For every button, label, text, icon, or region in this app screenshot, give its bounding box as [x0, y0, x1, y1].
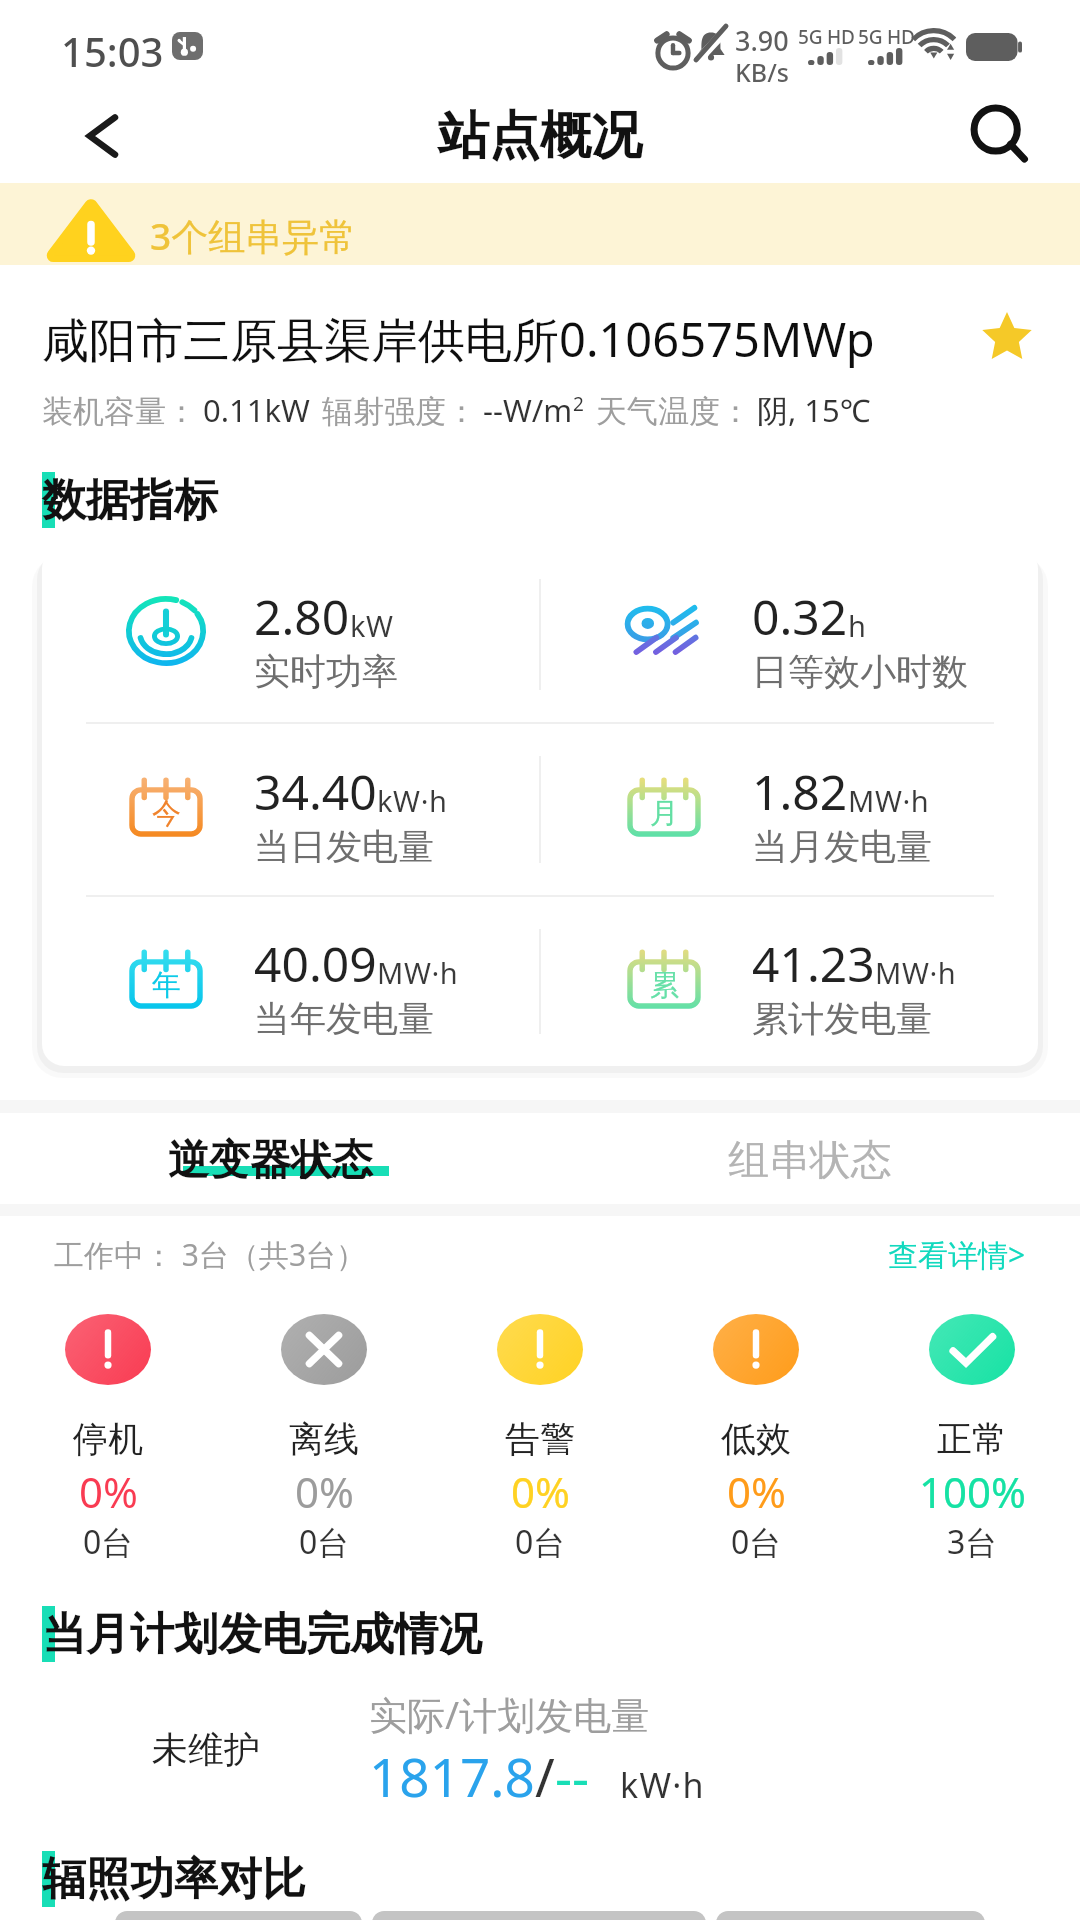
staticText: 阴, 15℃ — [757, 389, 871, 431]
staticText: 3个组串异常 — [150, 210, 357, 261]
staticText: 日等效小时数 — [752, 649, 968, 694]
button[interactable]: 2.80 — [42, 547, 540, 722]
staticText: 正常 — [937, 1417, 1007, 1461]
staticText: 数据指标 — [42, 473, 218, 528]
button[interactable] — [372, 1911, 706, 1920]
button[interactable]: 今 — [42, 724, 540, 895]
button[interactable]: 低效 — [648, 1314, 864, 1564]
staticText: 逆变器状态 — [168, 1135, 373, 1187]
staticText: 0.106575MWp — [559, 307, 875, 371]
button[interactable]: 0.32 — [540, 547, 1038, 722]
staticText: 累 — [650, 967, 679, 1004]
button[interactable]: 正常 — [864, 1314, 1080, 1564]
staticText: 1817.8 — [369, 1740, 535, 1812]
staticText: 站点概况 — [438, 104, 642, 168]
staticText: / — [535, 1740, 555, 1812]
staticText: 0% — [295, 1463, 354, 1520]
staticText: 34.40 — [254, 759, 377, 824]
staticText: 天气温度： — [596, 392, 751, 431]
staticText: 0台 — [731, 1520, 782, 1564]
button[interactable]: Search — [964, 100, 1036, 172]
button[interactable]: 告警 — [432, 1314, 648, 1564]
staticText: 工作中： 3台（共3台） — [54, 1234, 367, 1275]
button[interactable]: 停机 — [0, 1314, 216, 1564]
button[interactable]: 年 — [42, 897, 540, 1066]
staticText: 辐照功率对比 — [42, 1852, 306, 1907]
staticText: 0% — [79, 1463, 138, 1520]
button[interactable]: Back — [70, 106, 130, 166]
staticText: 年 — [152, 967, 181, 1004]
staticText: 0% — [727, 1463, 786, 1520]
button[interactable]: 月 — [540, 724, 1038, 895]
staticText: 实时功率 — [254, 649, 398, 694]
staticText: --W/m — [483, 389, 573, 431]
staticText: 辐射强度： — [322, 392, 477, 431]
staticText: 离线 — [289, 1417, 359, 1461]
button[interactable]: 查看详情> — [888, 1234, 1026, 1275]
staticText: 查看详情> — [888, 1234, 1026, 1275]
staticText: 100% — [919, 1463, 1026, 1520]
staticText: 41.23 — [752, 931, 875, 996]
staticText: 当月计划发电完成情况 — [42, 1607, 482, 1662]
staticText: 0台 — [83, 1520, 134, 1564]
staticText: MW·h — [875, 953, 957, 992]
staticText: kW·h — [377, 781, 448, 820]
staticText: 2.80 — [254, 584, 350, 649]
staticText: MW·h — [377, 953, 459, 992]
staticText: 月 — [650, 795, 679, 832]
staticText: 装机容量： — [42, 392, 197, 431]
staticText: 低效 — [721, 1417, 791, 1461]
staticText: kW·h — [590, 1762, 705, 1808]
button[interactable]: Favorite — [981, 310, 1033, 362]
staticText: 5G HD — [798, 24, 855, 50]
staticText: 实际/计划发电量 — [369, 1688, 650, 1740]
staticText: 5G HD — [858, 24, 915, 50]
staticText: KB/s — [735, 55, 789, 89]
staticText: 咸阳市三原县渠岸供电所 — [42, 312, 559, 371]
button[interactable] — [716, 1911, 985, 1920]
button[interactable]: 组串状态 — [540, 1113, 1080, 1204]
staticText: 组串状态 — [728, 1135, 892, 1187]
staticText: 今 — [152, 795, 181, 832]
staticText: 2 — [573, 391, 584, 417]
staticText: 告警 — [505, 1417, 575, 1461]
staticText: 0.32 — [752, 584, 848, 649]
staticText: 累计发电量 — [752, 996, 932, 1041]
staticText: 3台 — [947, 1520, 998, 1564]
staticText: 当年发电量 — [254, 996, 434, 1041]
staticText: 停机 — [73, 1417, 143, 1461]
button[interactable]: 累 — [540, 897, 1038, 1066]
staticText: MW·h — [848, 781, 930, 820]
staticText: 40.09 — [254, 931, 377, 996]
button[interactable]: 逆变器状态 — [0, 1113, 540, 1204]
staticText: 当月发电量 — [752, 824, 932, 869]
staticText: 当日发电量 — [254, 824, 434, 869]
staticText: 3.90 — [735, 22, 789, 59]
staticText: 0台 — [299, 1520, 350, 1564]
staticText: h — [848, 606, 867, 645]
staticText: 1.82 — [752, 759, 848, 824]
staticText: 0台 — [515, 1520, 566, 1564]
button[interactable] — [115, 1911, 362, 1920]
staticText: 0.11kW — [203, 389, 310, 431]
staticText: kW — [350, 606, 394, 645]
button[interactable]: 离线 — [216, 1314, 432, 1564]
staticText: -- — [555, 1740, 590, 1812]
staticText: 0% — [511, 1463, 570, 1520]
staticText: 15:03 — [61, 24, 164, 78]
staticText: 未维护 — [152, 1727, 260, 1772]
button[interactable]: 3个组串异常 — [0, 183, 1080, 265]
